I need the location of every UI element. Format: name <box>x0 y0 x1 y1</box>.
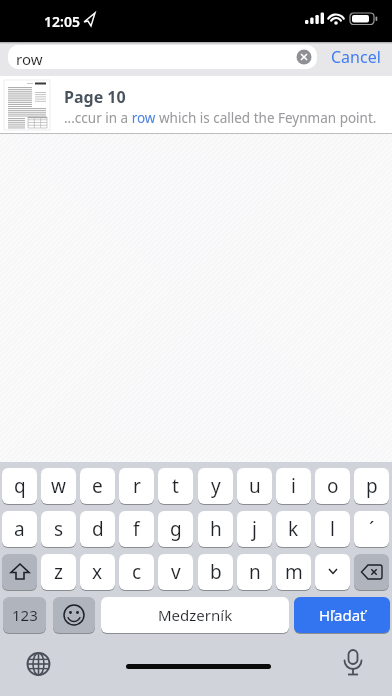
button[interactable]: Medzerník <box>101 597 289 633</box>
staticText: Medzerník <box>158 605 233 625</box>
button[interactable]: a <box>2 511 37 547</box>
staticText: n <box>249 559 261 585</box>
staticText: ´ <box>369 516 375 542</box>
staticText: m <box>285 559 303 585</box>
staticText: q <box>14 473 26 499</box>
staticText: c <box>132 559 142 585</box>
button[interactable]: l <box>315 511 350 547</box>
button[interactable]: c <box>119 554 154 590</box>
button[interactable]: 123 <box>3 597 46 633</box>
staticText: Cancel <box>331 46 381 68</box>
button[interactable]: p <box>354 468 389 504</box>
staticText: h <box>210 516 222 542</box>
button[interactable]: w <box>41 468 76 504</box>
staticText: x <box>92 559 103 585</box>
button[interactable]: Page 10 <box>0 76 392 134</box>
staticText: w <box>51 473 66 499</box>
staticText: a <box>14 516 25 542</box>
button[interactable]: row <box>8 45 317 69</box>
staticText: u <box>249 473 261 499</box>
staticText: s <box>54 516 64 542</box>
button[interactable]: u <box>237 468 272 504</box>
staticText: z <box>54 559 63 585</box>
staticText: 12:05 <box>44 12 80 31</box>
button[interactable] <box>16 642 61 687</box>
button[interactable]: q <box>2 468 37 504</box>
staticText: g <box>170 516 182 542</box>
button[interactable]: h <box>198 511 233 547</box>
staticText: t <box>172 473 179 499</box>
button[interactable]: y <box>198 468 233 504</box>
staticText: y <box>211 473 221 499</box>
button[interactable] <box>2 554 37 590</box>
button[interactable]: m <box>276 554 311 590</box>
button[interactable]: z <box>41 554 76 590</box>
button[interactable]: s <box>41 511 76 547</box>
button[interactable] <box>53 597 95 633</box>
staticText: l <box>330 516 335 542</box>
button[interactable]: o <box>315 468 350 504</box>
button[interactable]: ´ <box>354 511 389 547</box>
button[interactable]: f <box>119 511 154 547</box>
button[interactable]: j <box>237 511 272 547</box>
button[interactable]: x <box>80 554 115 590</box>
staticText: Page 10 <box>64 86 126 108</box>
button[interactable]: t <box>158 468 193 504</box>
staticText: ...ccur in a row which is called the Fey… <box>64 109 377 127</box>
button[interactable]: b <box>198 554 233 590</box>
staticText: i <box>291 473 296 499</box>
button[interactable]: i <box>276 468 311 504</box>
button[interactable]: n <box>237 554 272 590</box>
button[interactable]: k <box>276 511 311 547</box>
staticText: r <box>133 473 141 499</box>
staticText: e <box>92 473 103 499</box>
button[interactable]: Cancel <box>325 44 387 70</box>
button[interactable]: Hľadať <box>294 597 390 633</box>
staticText: k <box>288 516 299 542</box>
button[interactable]: d <box>80 511 115 547</box>
staticText: f <box>133 516 140 542</box>
staticText: row <box>16 49 43 69</box>
staticText: p <box>366 473 378 499</box>
button[interactable]: g <box>158 511 193 547</box>
staticText: 123 <box>12 605 38 625</box>
staticText: b <box>210 559 222 585</box>
button[interactable] <box>354 554 389 590</box>
button[interactable]: e <box>80 468 115 504</box>
staticText: d <box>92 516 104 542</box>
staticText: o <box>327 473 339 499</box>
staticText: j <box>252 516 257 542</box>
button[interactable]: r <box>119 468 154 504</box>
staticText: v <box>171 559 181 585</box>
staticText: Hľadať <box>319 605 366 625</box>
button[interactable]: v <box>158 554 193 590</box>
button[interactable] <box>315 554 350 590</box>
